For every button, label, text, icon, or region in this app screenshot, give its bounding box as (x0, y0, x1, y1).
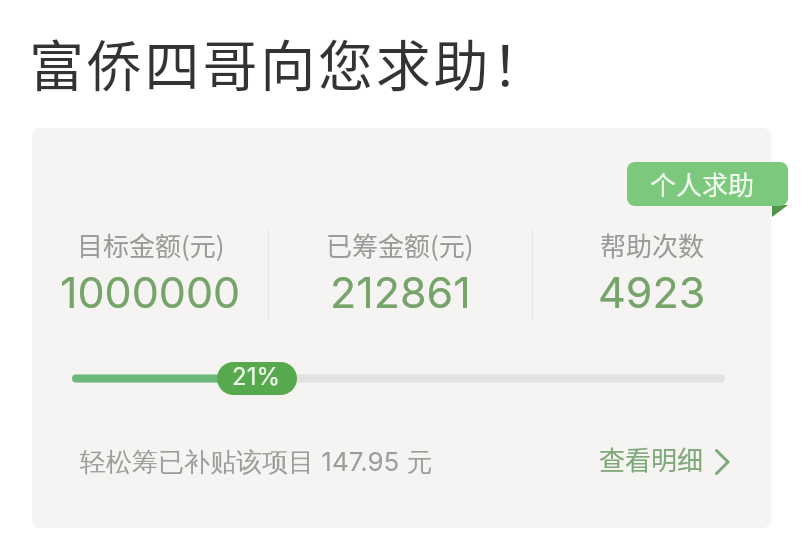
staticText: 4923 (598, 266, 706, 316)
staticText: 已筹金额(元) (326, 226, 474, 264)
staticText: 目标金额(元) (77, 226, 225, 264)
other: 查看明细 (715, 441, 730, 477)
button[interactable]: 个人求助 (627, 162, 788, 206)
staticText: 21% (232, 362, 280, 391)
staticText: 帮助次数 (600, 226, 705, 264)
staticText: 富侨四哥向您求助！ (29, 22, 550, 102)
button[interactable]: 查看明细 (599, 440, 730, 478)
staticText: 查看明细 (599, 440, 704, 478)
staticText: 212861 (330, 266, 471, 316)
staticText: 1000000 (60, 266, 241, 316)
staticText: 轻松筹已补贴该项目 147.95 元 (80, 446, 433, 479)
staticText: 个人求助 (650, 165, 755, 203)
